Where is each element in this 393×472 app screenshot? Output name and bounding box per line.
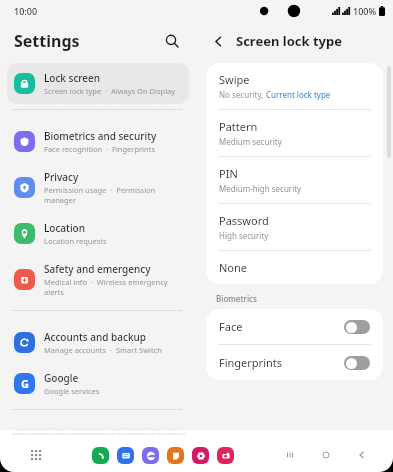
button[interactable]: Home bbox=[317, 446, 335, 464]
staticText: Google bbox=[44, 371, 79, 385]
button[interactable]: Face bbox=[206, 309, 383, 344]
staticText: Accounts and backup bbox=[44, 330, 146, 344]
button[interactable]: Camera bbox=[217, 447, 234, 464]
staticText: 100% bbox=[353, 5, 377, 17]
button[interactable]: G bbox=[7, 363, 189, 404]
button[interactable]: Gallery bbox=[192, 447, 209, 464]
button[interactable]: None bbox=[206, 251, 383, 284]
button[interactable]: PIN bbox=[206, 157, 383, 203]
button[interactable]: Location bbox=[7, 213, 189, 254]
staticText: High security bbox=[219, 230, 269, 241]
button[interactable]: Privacy bbox=[7, 162, 189, 213]
staticText: 10:00 bbox=[14, 5, 38, 17]
button[interactable]: Apps bbox=[26, 445, 46, 465]
button[interactable]: Accounts and backup bbox=[7, 322, 189, 363]
staticText: Biometrics and security bbox=[44, 129, 157, 143]
staticText: Current lock type bbox=[266, 89, 331, 100]
staticText: Location bbox=[44, 221, 85, 235]
button[interactable]: Fingerprints bbox=[206, 345, 383, 380]
staticText: Screen lock type · Always On Display bbox=[44, 86, 176, 96]
staticText: Biometrics bbox=[216, 293, 257, 304]
button[interactable]: Back bbox=[353, 446, 371, 464]
staticText: Google services bbox=[44, 386, 100, 396]
staticText: Lock screen bbox=[44, 71, 101, 85]
button[interactable]: Notes bbox=[167, 447, 184, 464]
button[interactable]: Biometrics and security bbox=[7, 121, 189, 162]
staticText: Medium-high security bbox=[219, 183, 302, 194]
staticText: Screen lock type bbox=[236, 32, 342, 50]
staticText: None bbox=[219, 260, 248, 275]
staticText: Location requests bbox=[44, 236, 107, 246]
staticText: G bbox=[21, 376, 29, 391]
button[interactable]: Recents bbox=[281, 446, 299, 464]
staticText: Manage accounts · Smart Switch bbox=[44, 345, 162, 355]
staticText: No security, bbox=[219, 89, 266, 100]
button[interactable]: Internet bbox=[142, 447, 159, 464]
button[interactable]: Messages bbox=[117, 447, 134, 464]
staticText: Password bbox=[219, 213, 269, 228]
staticText: Pattern bbox=[219, 119, 258, 134]
button[interactable]: Back bbox=[206, 29, 230, 53]
staticText: Privacy bbox=[44, 170, 79, 184]
staticText: Face recognition · Fingerprints bbox=[44, 144, 155, 154]
staticText: PIN bbox=[219, 166, 238, 181]
staticText: Fingerprints bbox=[219, 355, 283, 370]
button[interactable]: Phone bbox=[92, 447, 109, 464]
staticText: Permission usage · Permission manager bbox=[44, 185, 181, 205]
button[interactable]: Swipe bbox=[206, 63, 383, 109]
staticText: Settings bbox=[14, 30, 80, 52]
button[interactable]: Search bbox=[158, 27, 186, 55]
button[interactable]: Pattern bbox=[206, 110, 383, 156]
button[interactable]: Password bbox=[206, 204, 383, 250]
button[interactable]: Advanced features bbox=[7, 421, 189, 430]
staticText: Swipe bbox=[219, 72, 250, 87]
staticText: Medical info · Wireless emergency alerts bbox=[44, 277, 181, 297]
staticText: Face bbox=[219, 319, 243, 334]
staticText: Medium security bbox=[219, 136, 282, 147]
button[interactable]: Safety and emergency bbox=[7, 254, 189, 305]
button[interactable]: Lock screen bbox=[7, 63, 189, 104]
staticText: Safety and emergency bbox=[44, 262, 151, 276]
